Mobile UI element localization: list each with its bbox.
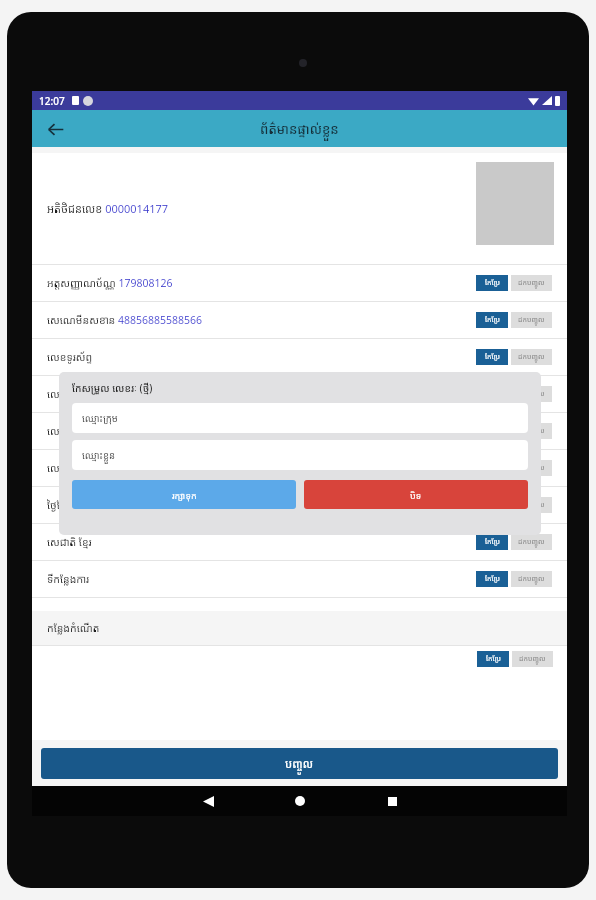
button[interactable]: ដកបញ្ចូល bbox=[512, 651, 553, 667]
staticText: ដកបញ្ចូល bbox=[518, 500, 545, 510]
button[interactable]: កែប្រែ bbox=[476, 423, 508, 439]
staticText: អត្តសញ្ញាណប័ណ្ណ 179808126 bbox=[47, 276, 173, 290]
button[interactable]: លេខសម្គាល់ bbox=[32, 413, 567, 449]
button[interactable]: ដកបញ្ចូល bbox=[511, 497, 552, 513]
staticText: កែប្រែ bbox=[485, 315, 500, 325]
staticText: កន្លែងកំណើត bbox=[47, 621, 100, 635]
button[interactable]: ដកបញ្ចូល bbox=[511, 571, 552, 587]
button[interactable]: ដកបញ្ចូល bbox=[511, 423, 552, 439]
button[interactable]: ដកបញ្ចូល bbox=[511, 386, 552, 402]
staticText: កែប្រែ bbox=[485, 500, 500, 510]
button[interactable]: រក្សាទុក bbox=[72, 480, 296, 509]
button[interactable]: កែប្រែ bbox=[476, 275, 508, 291]
button[interactable]: ឈ្មោះខ្លួន bbox=[72, 440, 528, 470]
button[interactable]: កែប្រែ bbox=[476, 534, 508, 550]
staticText: កែប្រែ bbox=[485, 463, 500, 473]
button[interactable]: កែប្រែ bbox=[476, 460, 508, 476]
staticText: បិទ bbox=[410, 489, 422, 501]
staticText: ឈ្មោះក្រុម bbox=[82, 412, 118, 425]
button[interactable]: កែប្រែ bbox=[476, 571, 508, 587]
button[interactable]: កែប្រែ bbox=[476, 349, 508, 365]
staticText: ព័ត៌មានផ្ទាល់ខ្លួន bbox=[260, 120, 339, 138]
button[interactable]: ដកបញ្ចូល bbox=[511, 275, 552, 291]
button[interactable]: លេខទូរស័ព្ទ bbox=[32, 339, 567, 375]
staticText: លេខទូរស័ព្ទ bbox=[47, 350, 95, 364]
staticText: រក្សាទុក bbox=[172, 489, 197, 501]
button[interactable]: លេខបញ្ជីករ bbox=[32, 450, 567, 486]
staticText: ដកបញ្ចូល bbox=[518, 574, 545, 584]
staticText: សេណេមីនសខាន 48856885588566 bbox=[47, 313, 203, 327]
staticText: 12:07 bbox=[39, 94, 65, 108]
button[interactable]: ដកបញ្ចូល bbox=[511, 460, 552, 476]
button[interactable]: Recent apps bbox=[369, 786, 415, 816]
staticText: លេខគណនី bbox=[47, 387, 96, 401]
staticText: បញ្ចូល bbox=[285, 756, 314, 771]
staticText: កែប្រែ bbox=[486, 654, 501, 664]
staticText: កែប្រែ bbox=[485, 352, 500, 362]
staticText: សេជាតិ ខ្មែរ bbox=[47, 535, 95, 549]
button[interactable]: អត្តសញ្ញាណប័ណ្ណ 179808126 bbox=[32, 265, 567, 301]
button[interactable]: កែប្រែ bbox=[476, 312, 508, 328]
staticText: ដកបញ្ចូល bbox=[518, 278, 545, 288]
button[interactable]: Home bbox=[277, 786, 323, 816]
staticText: កែប្រែ bbox=[485, 574, 500, 584]
button[interactable]: ថ្ងៃខែឆ្នាំកំណើត 20-11-1969 bbox=[32, 487, 567, 523]
button[interactable]: បិទ bbox=[304, 480, 528, 509]
button[interactable]: លេខគណនី bbox=[32, 376, 567, 412]
button[interactable]: ទីកន្លែងការ bbox=[32, 561, 567, 597]
staticText: ដកបញ្ចូល bbox=[518, 463, 545, 473]
staticText: ដកបញ្ចូល bbox=[519, 654, 546, 664]
staticText: កែប្រែ bbox=[485, 278, 500, 288]
button[interactable]: ដកបញ្ចូល bbox=[511, 349, 552, 365]
staticText: ដកបញ្ចូល bbox=[518, 426, 545, 436]
staticText: ដកបញ្ចូល bbox=[518, 537, 545, 547]
button[interactable]: កែប្រែ bbox=[477, 651, 509, 667]
staticText: ឈ្មោះខ្លួន bbox=[82, 449, 116, 462]
staticText: កែប្រែ bbox=[485, 537, 500, 547]
button[interactable]: ដកបញ្ចូល bbox=[511, 312, 552, 328]
button[interactable]: ដកបញ្ចូល bbox=[511, 534, 552, 550]
button[interactable]: បញ្ចូល bbox=[41, 748, 558, 779]
staticText: លេខបញ្ជីករ bbox=[47, 461, 96, 475]
staticText: កែប្រែ bbox=[485, 426, 500, 436]
staticText: ដកបញ្ចូល bbox=[518, 389, 545, 399]
staticText: ដកបញ្ចូល bbox=[518, 352, 545, 362]
staticText: ដកបញ្ចូល bbox=[518, 315, 545, 325]
button[interactable]: Back bbox=[40, 114, 70, 144]
button[interactable]: កែប្រែ bbox=[476, 497, 508, 513]
staticText: អតិថិជនលេខ 0000014177 bbox=[47, 201, 169, 216]
button[interactable]: ឈ្មោះក្រុម bbox=[72, 403, 528, 433]
button[interactable]: សេជាតិ ខ្មែរ bbox=[32, 524, 567, 560]
staticText: កែសម្រួល លេខរៈ (ថ្មី) bbox=[72, 381, 153, 395]
button[interactable]: Back bbox=[185, 786, 231, 816]
staticText: ទីកន្លែងការ bbox=[47, 572, 92, 586]
staticText: ថ្ងៃខែឆ្នាំកំណើត 20-11-1969 bbox=[47, 498, 164, 512]
staticText: លេខសម្គាល់ bbox=[47, 424, 99, 438]
button[interactable]: សេណេមីនសខាន 48856885588566 bbox=[32, 302, 567, 338]
